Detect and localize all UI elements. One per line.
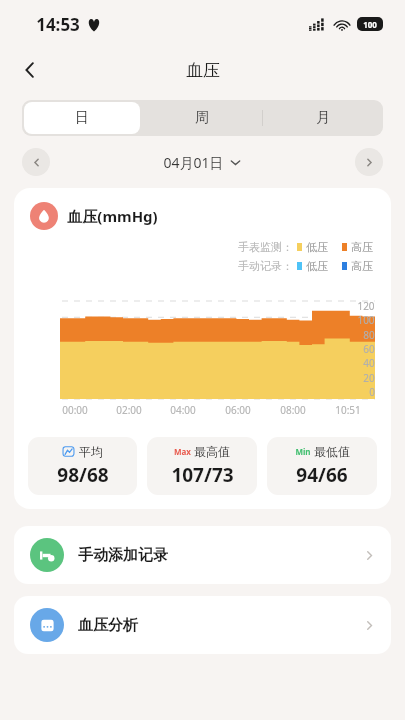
button[interactable]: 血压分析 — [14, 596, 391, 654]
staticText: 100 — [357, 313, 375, 327]
staticText: 日 — [75, 109, 89, 127]
staticText: 60 — [363, 342, 375, 356]
staticText: 血压 — [186, 60, 220, 81]
staticText: 98/68 — [57, 462, 109, 488]
staticText: 04:00 — [170, 403, 196, 417]
staticText: 40 — [363, 356, 375, 370]
staticText: 80 — [363, 328, 375, 342]
staticText: 00:00 — [62, 403, 88, 417]
button[interactable]: 日 — [24, 102, 140, 134]
button[interactable]: 04月01日 — [163, 153, 241, 172]
staticText: 08:00 — [280, 403, 306, 417]
staticText: 低压 — [306, 259, 328, 273]
staticText: 10:51 — [335, 403, 361, 417]
staticText: 02:00 — [116, 403, 142, 417]
staticText: 最高值 — [194, 444, 230, 459]
staticText: 04月01日 — [163, 153, 224, 172]
staticText: 100 — [363, 19, 377, 30]
staticText: 血压分析 — [78, 616, 138, 635]
staticText: 高压 — [351, 259, 373, 273]
button[interactable]: 手动添加记录 — [14, 526, 391, 584]
staticText: 06:00 — [225, 403, 251, 417]
staticText: 周 — [195, 109, 209, 127]
staticText: 20 — [363, 371, 375, 385]
staticText: 手表监测： — [238, 240, 293, 254]
staticText: 手动记录： — [238, 259, 293, 273]
staticText: 手动添加记录 — [78, 546, 168, 565]
staticText: 120 — [357, 299, 375, 313]
staticText: 107/73 — [171, 462, 234, 488]
button[interactable]: Back — [10, 50, 50, 90]
staticText: 14:53 — [36, 13, 80, 36]
staticText: 高压 — [351, 240, 373, 254]
staticText: 平均 — [79, 444, 103, 459]
button[interactable]: 月 — [263, 100, 383, 136]
button[interactable]: Min — [267, 437, 377, 495]
staticText: 低压 — [306, 240, 328, 254]
button[interactable]: Max — [147, 437, 257, 495]
staticText: 0 — [369, 385, 375, 399]
staticText: 94/66 — [296, 462, 348, 488]
staticText: Min — [295, 446, 311, 457]
button[interactable]: Next day — [355, 148, 383, 176]
button[interactable]: 周 — [142, 100, 262, 136]
staticText: 最低值 — [314, 444, 350, 459]
staticText: 月 — [316, 109, 330, 127]
button[interactable]: 平均 — [28, 437, 137, 495]
button[interactable]: Previous day — [22, 148, 50, 176]
staticText: 血压(mmHg) — [67, 206, 158, 226]
staticText: Max — [174, 446, 191, 457]
